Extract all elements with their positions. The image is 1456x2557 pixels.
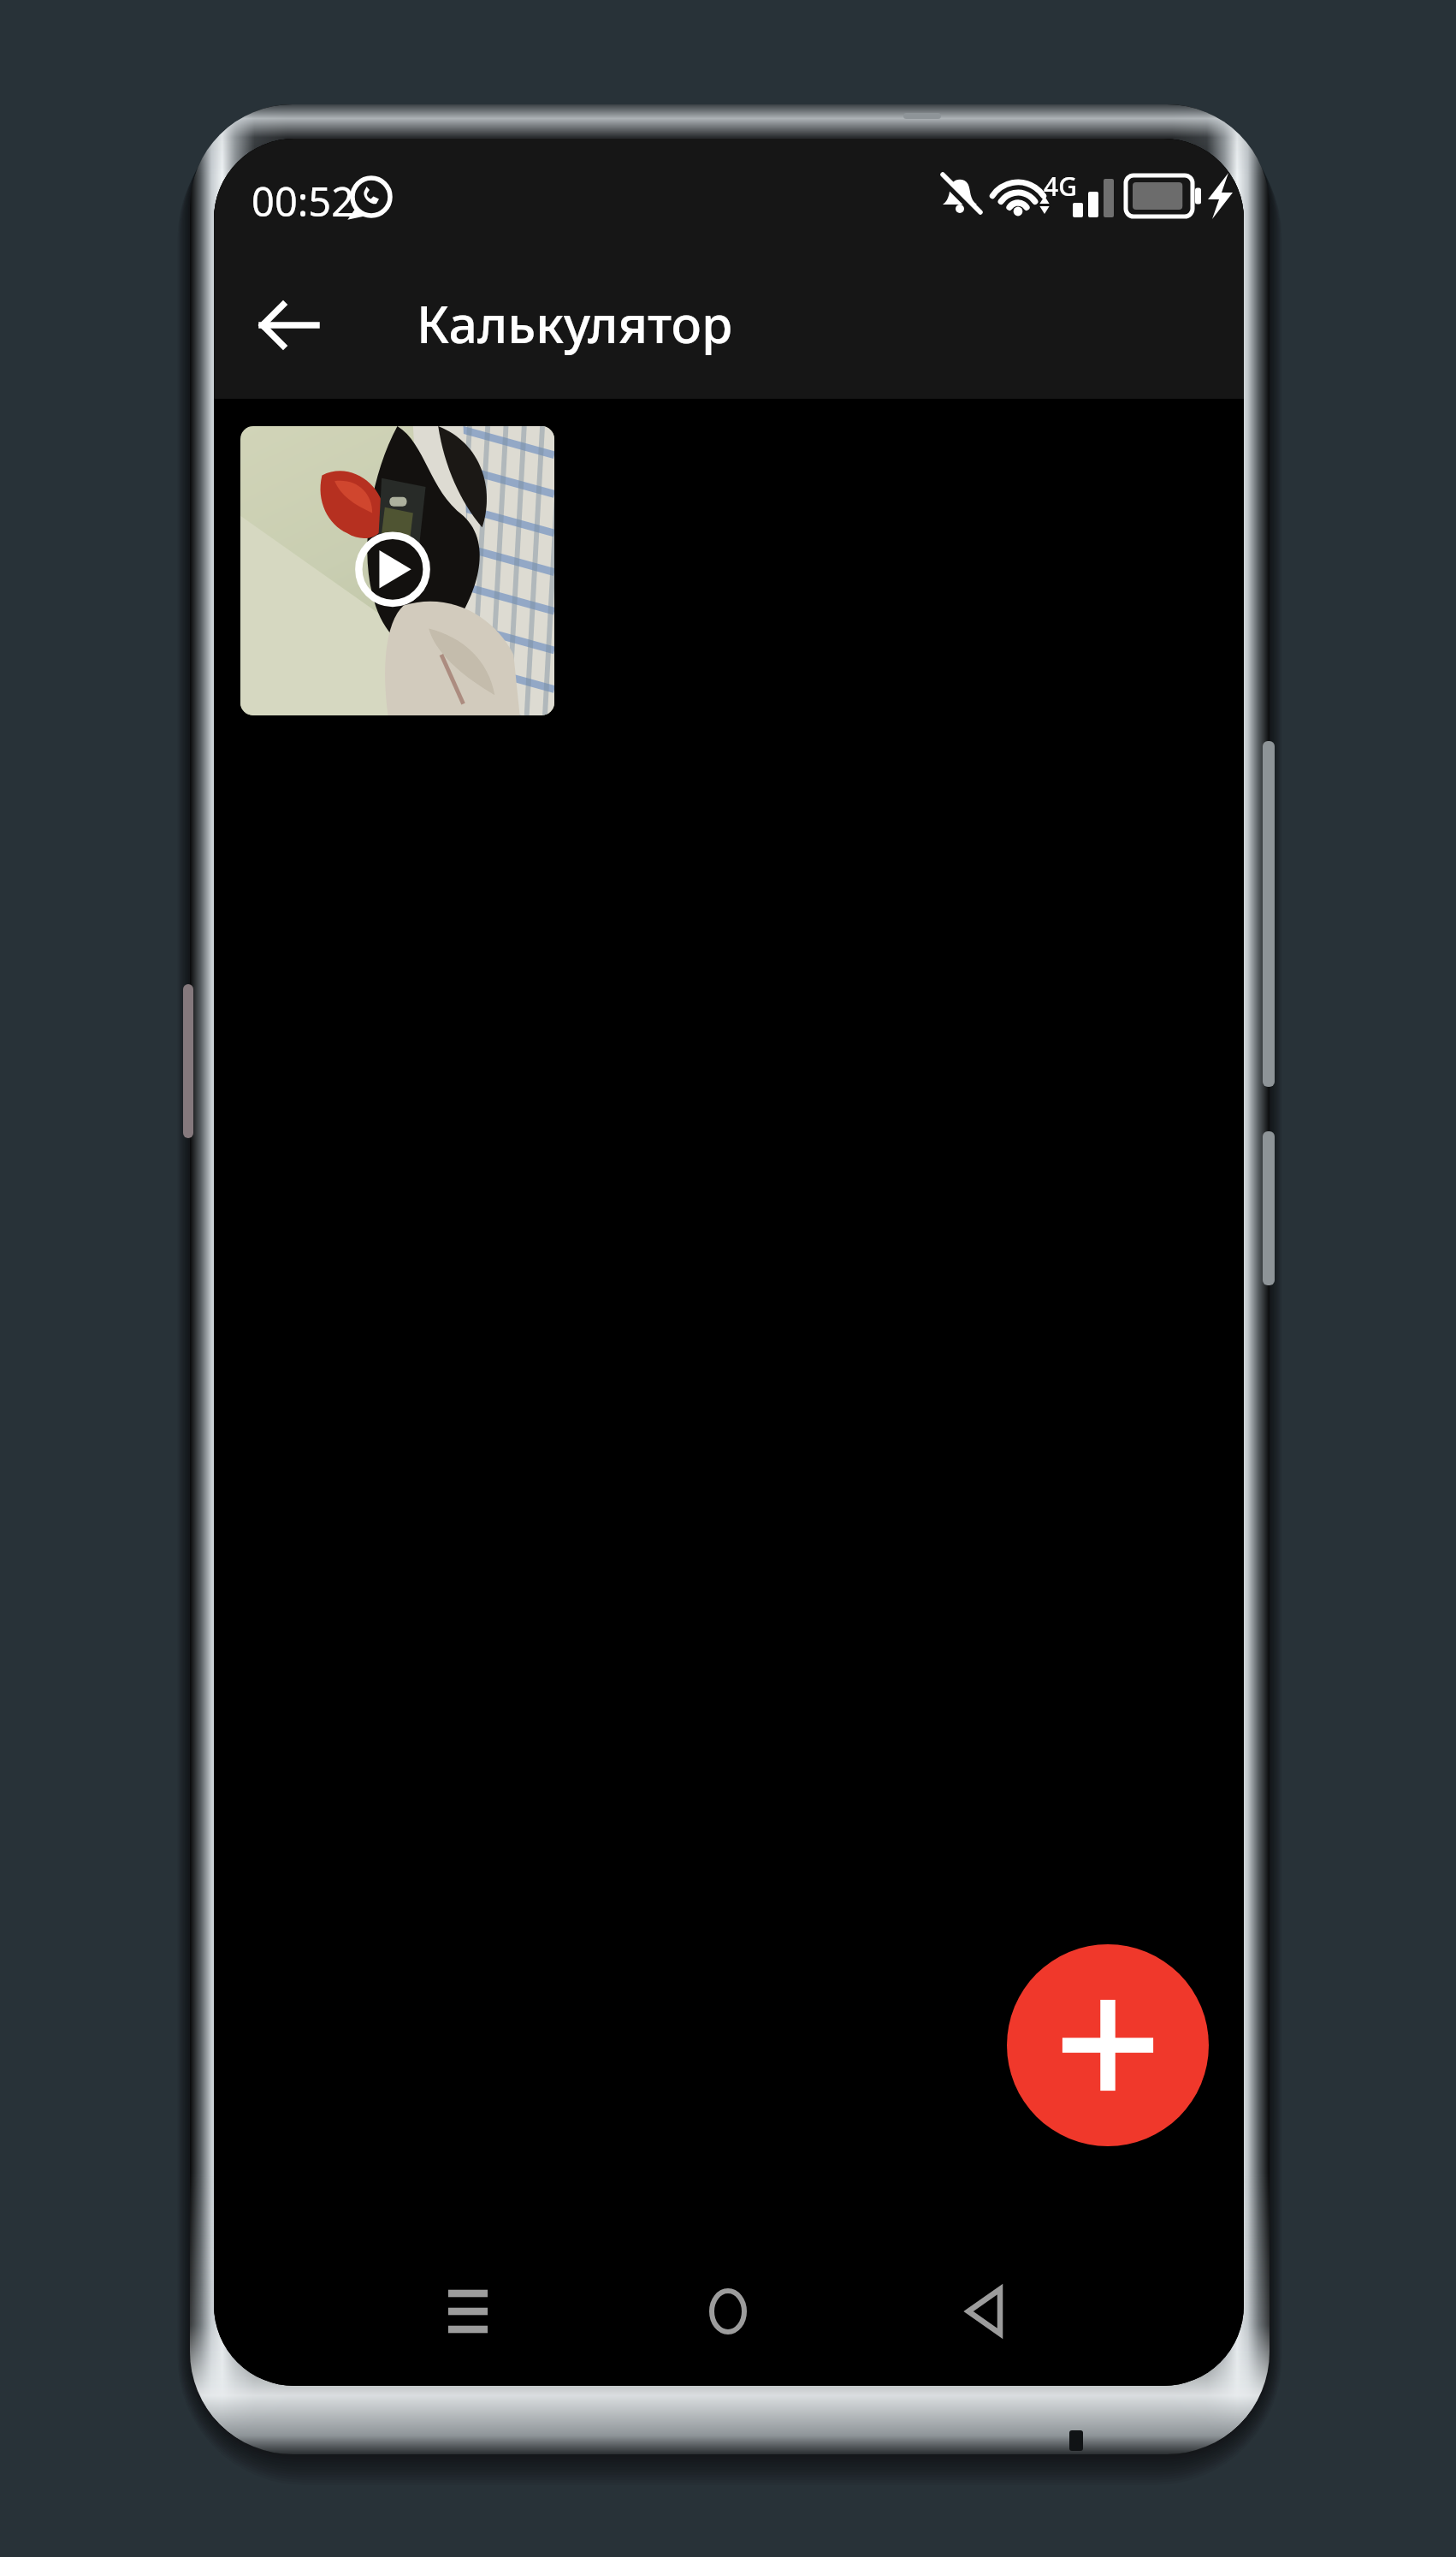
button[interactable]: Add (1007, 1944, 1209, 2146)
button[interactable]: Back (922, 2255, 1051, 2368)
staticText: 4G (1044, 169, 1077, 204)
button[interactable]: Recent apps (404, 2255, 532, 2368)
staticText: 46 (1140, 178, 1175, 219)
button[interactable]: Play video (240, 426, 554, 715)
button[interactable]: Back (236, 272, 342, 378)
button[interactable]: Home (664, 2255, 792, 2368)
staticText: 00:52 (252, 174, 355, 228)
staticText: Калькулятор (417, 289, 733, 358)
